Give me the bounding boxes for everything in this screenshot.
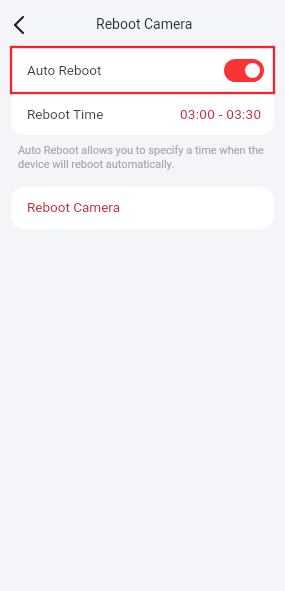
staticText: 03:00 - 03:30 [180, 106, 262, 122]
staticText: Auto Reboot allows you to specify a time… [18, 144, 272, 171]
button[interactable]: Reboot Time [11, 93, 274, 135]
staticText: Reboot Camera [96, 16, 193, 32]
button[interactable]: Auto Reboot [11, 45, 274, 93]
staticText: Reboot Camera [27, 199, 121, 215]
staticText: Auto Reboot [27, 62, 102, 78]
button[interactable]: Auto Reboot toggle [224, 59, 264, 82]
button[interactable]: Back [3, 9, 35, 41]
button[interactable]: Reboot Camera [11, 187, 274, 229]
staticText: Reboot Time [27, 106, 104, 122]
